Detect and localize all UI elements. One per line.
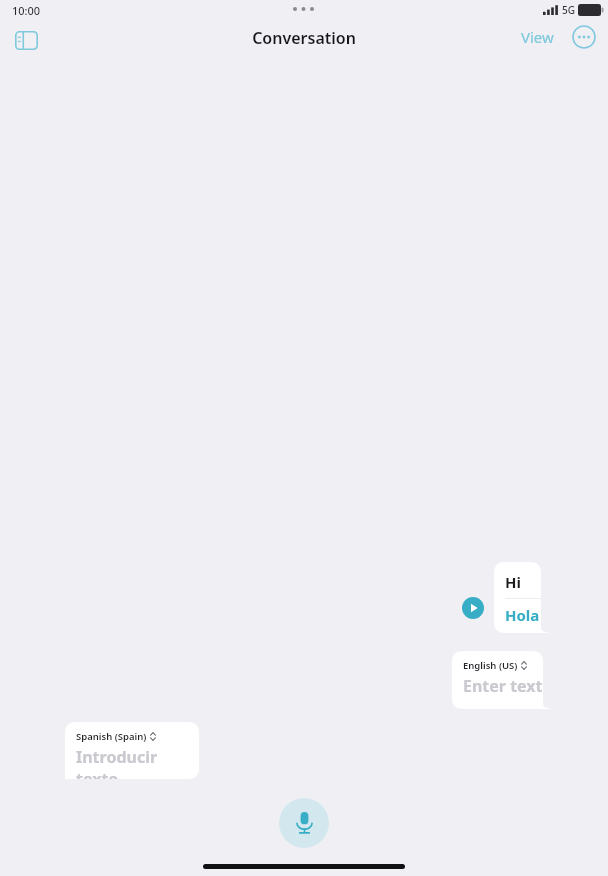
staticText: Spanish (Spain) [76,730,147,743]
staticText: 10:00 [12,3,41,18]
staticText: 5G [562,3,575,17]
staticText: Hi [505,572,521,592]
staticText: Conversation [0,27,608,49]
button[interactable]: More options [570,23,598,51]
button[interactable]: Play translation [462,597,484,619]
staticText: English (US) [463,659,518,672]
button[interactable]: Hi [494,562,550,633]
staticText: Enter text [463,675,543,697]
button[interactable]: Start listening [279,798,329,848]
button[interactable]: Show sidebar [8,22,44,58]
button[interactable]: English (US) [452,651,552,709]
staticText: Introducir texto [76,746,199,779]
staticText: Hola [505,605,540,625]
button[interactable]: Spanish (Spain) [56,722,199,779]
staticText: View [521,27,554,47]
button[interactable]: View [521,24,554,50]
